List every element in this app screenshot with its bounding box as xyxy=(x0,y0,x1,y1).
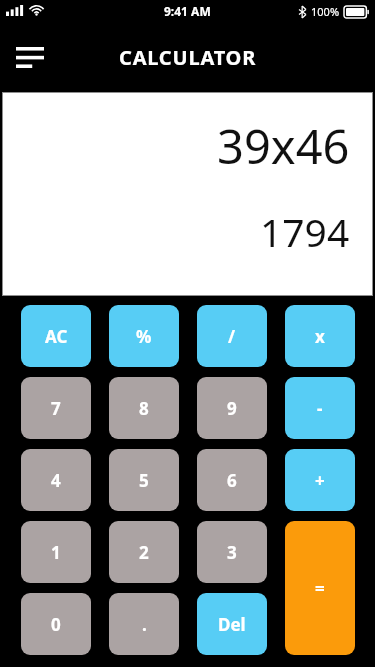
button[interactable]: + xyxy=(285,449,355,511)
button[interactable]: . xyxy=(109,593,179,655)
button[interactable]: = xyxy=(285,521,355,655)
button[interactable]: 9 xyxy=(197,377,267,439)
button[interactable]: 5 xyxy=(109,449,179,511)
staticText: + xyxy=(315,469,325,492)
staticText: x xyxy=(315,325,325,348)
staticText: 100% xyxy=(311,4,340,19)
staticText: 1794 xyxy=(260,205,350,258)
button[interactable]: 6 xyxy=(197,449,267,511)
staticText: 1 xyxy=(51,541,61,564)
button[interactable]: 8 xyxy=(109,377,179,439)
staticText: 5 xyxy=(139,469,149,492)
button[interactable]: % xyxy=(109,305,179,367)
staticText: Del xyxy=(218,613,246,636)
button[interactable]: 2 xyxy=(109,521,179,583)
staticText: % xyxy=(136,325,152,348)
staticText: AC xyxy=(45,325,68,348)
button[interactable]: Menu xyxy=(8,35,52,79)
button[interactable]: x xyxy=(285,305,355,367)
button[interactable]: 7 xyxy=(21,377,91,439)
button[interactable]: 4 xyxy=(21,449,91,511)
button[interactable]: 0 xyxy=(21,593,91,655)
button[interactable]: - xyxy=(285,377,355,439)
staticText: CALCULATOR xyxy=(119,44,257,71)
staticText: / xyxy=(228,325,236,348)
staticText: 8 xyxy=(139,397,149,420)
button[interactable]: / xyxy=(197,305,267,367)
staticText: 0 xyxy=(51,613,61,636)
staticText: 9 xyxy=(227,397,237,420)
staticText: 2 xyxy=(139,541,149,564)
button[interactable]: Del xyxy=(197,593,267,655)
staticText: 9:41 AM xyxy=(164,3,211,19)
staticText: - xyxy=(317,397,323,420)
button[interactable]: 3 xyxy=(197,521,267,583)
staticText: 3 xyxy=(227,541,237,564)
staticText: 7 xyxy=(51,397,61,420)
button[interactable]: AC xyxy=(21,305,91,367)
staticText: = xyxy=(315,577,325,600)
staticText: 39x46 xyxy=(217,114,350,178)
staticText: 6 xyxy=(227,469,237,492)
staticText: . xyxy=(142,613,147,636)
button[interactable]: 1 xyxy=(21,521,91,583)
staticText: 4 xyxy=(51,469,61,492)
